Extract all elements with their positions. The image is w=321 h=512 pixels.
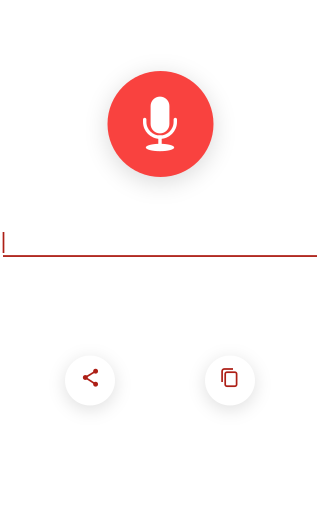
button[interactable]: Record (107, 71, 213, 177)
button[interactable]: Share (65, 355, 115, 405)
button[interactable]: Copy (205, 355, 255, 405)
